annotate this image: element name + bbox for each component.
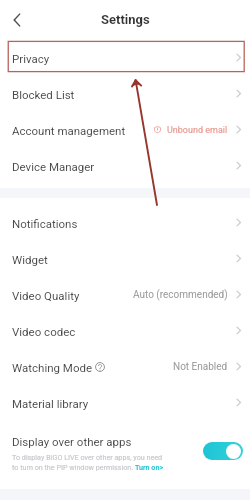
button[interactable]: Watching Mode: [0, 348, 250, 384]
staticText: Widget: [12, 253, 48, 266]
button[interactable]: Blocked List: [0, 75, 250, 111]
staticText: Settings: [101, 12, 150, 27]
staticText: Account management: [12, 124, 126, 137]
staticText: Material library: [12, 397, 89, 410]
button[interactable]: Back: [5, 8, 29, 32]
staticText: Video codec: [12, 325, 76, 338]
staticText: Privacy: [12, 52, 50, 65]
button[interactable]: Widget: [0, 240, 250, 276]
staticText: Device Manager: [12, 160, 95, 173]
staticText: Watching Mode: [12, 361, 93, 374]
staticText: Not Enabled: [173, 361, 228, 373]
staticText: Blocked List: [12, 88, 75, 101]
button[interactable]: Device Manager: [0, 147, 250, 183]
button[interactable]: Privacy: [0, 39, 250, 75]
staticText: To display BIGO LIVE over other apps, yo…: [12, 453, 164, 472]
button[interactable]: Material library: [0, 384, 250, 420]
button[interactable]: Display over other apps: [0, 420, 250, 482]
staticText: Notifications: [12, 217, 78, 230]
staticText: Auto (recommended): [133, 289, 228, 301]
button[interactable]: Video codec: [0, 312, 250, 348]
button[interactable]: Toggle display over other apps: [203, 442, 243, 460]
staticText: Display over other apps: [12, 435, 132, 448]
button[interactable]: Account management: [0, 111, 250, 147]
staticText: Video Quality: [12, 289, 80, 302]
button[interactable]: Notifications: [0, 204, 250, 240]
button[interactable]: Video Quality: [0, 276, 250, 312]
staticText: Unbound email: [167, 125, 228, 136]
